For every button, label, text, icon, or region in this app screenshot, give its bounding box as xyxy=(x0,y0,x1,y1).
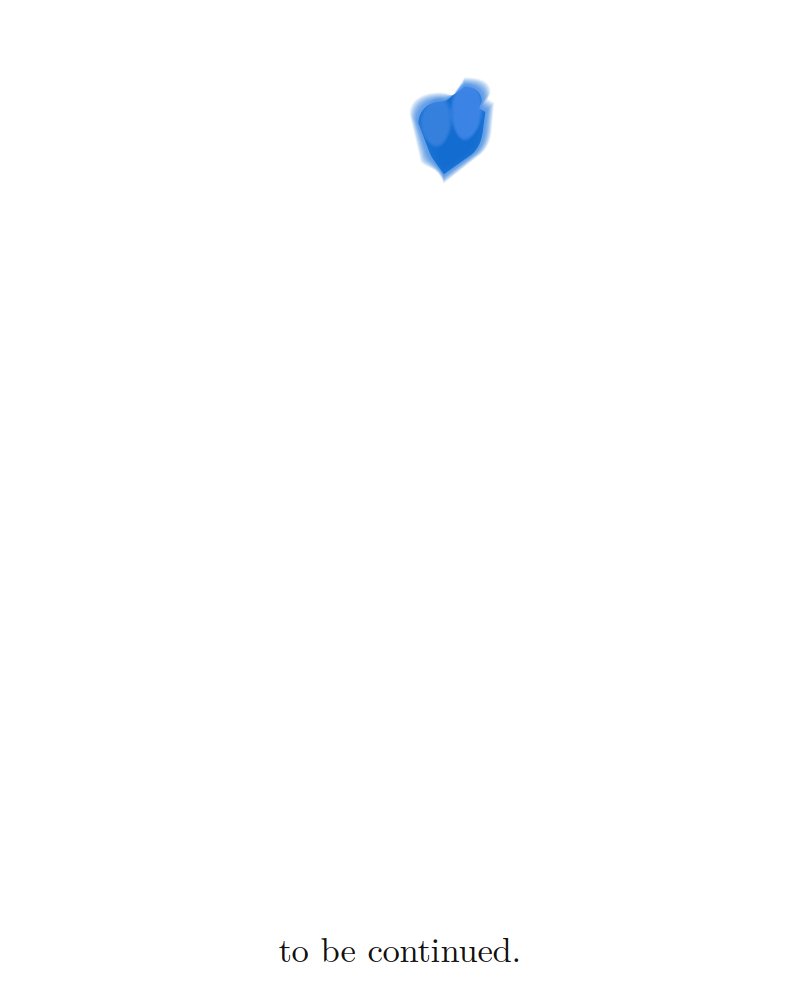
staticText: to be continued. xyxy=(278,923,521,972)
